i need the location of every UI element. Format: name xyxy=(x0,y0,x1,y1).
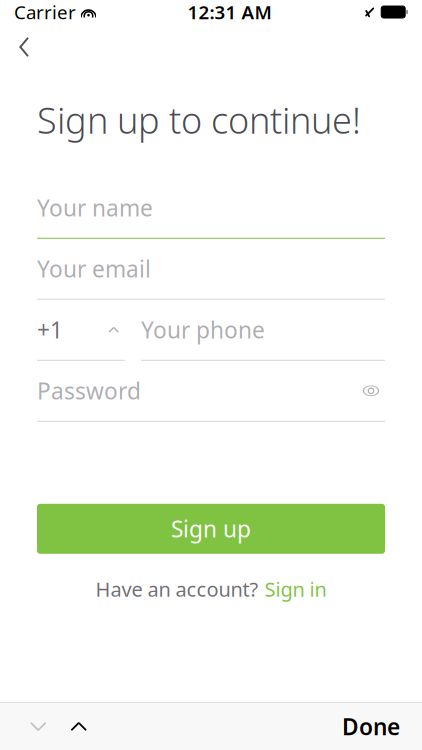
staticText: Your email xyxy=(37,254,151,284)
button[interactable]: Done xyxy=(338,703,404,749)
staticText: Carrier xyxy=(14,0,76,24)
staticText: +1 xyxy=(37,315,63,345)
button[interactable]: Show password xyxy=(357,378,385,404)
button[interactable]: Sign in xyxy=(264,576,326,602)
staticText: 12:31 AM xyxy=(188,0,272,24)
button[interactable]: Sign up xyxy=(37,504,385,554)
staticText: Sign up xyxy=(171,514,251,544)
staticText: Password xyxy=(37,376,141,406)
button[interactable]: +1 xyxy=(37,316,125,361)
staticText: Sign up to continue! xyxy=(37,96,361,144)
button[interactable]: Next field xyxy=(58,709,99,743)
staticText: Sign in xyxy=(264,576,326,602)
staticText: Have an account? xyxy=(95,576,258,602)
staticText: Done xyxy=(342,711,400,741)
staticText: Your phone xyxy=(141,315,265,345)
button[interactable]: Back xyxy=(0,25,48,69)
staticText: Your name xyxy=(37,193,153,223)
button[interactable]: Previous field xyxy=(18,709,58,743)
